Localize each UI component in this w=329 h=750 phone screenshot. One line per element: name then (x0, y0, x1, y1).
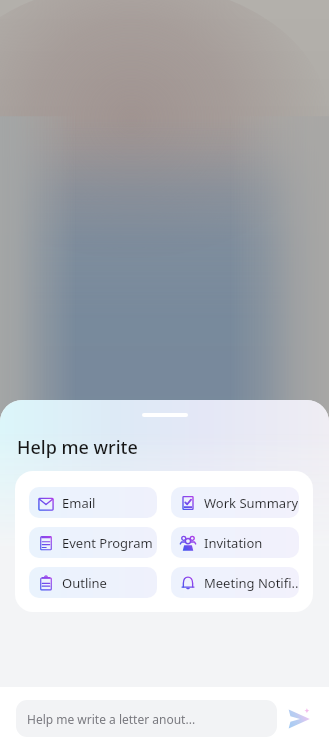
staticText: Help me write (17, 435, 138, 460)
staticText: Meeting Notifi... (204, 574, 298, 592)
button[interactable]: Email (29, 487, 157, 518)
button[interactable]: Send (277, 697, 321, 741)
staticText: Outline (62, 574, 107, 592)
button[interactable]: Work Summary (171, 487, 299, 518)
button[interactable]: Meeting Notifi... (171, 567, 299, 598)
staticText: Help me write a letter anout... (27, 711, 196, 727)
button[interactable]: Outline (29, 567, 157, 598)
staticText: Event Program (62, 534, 153, 552)
staticText: Email (62, 494, 96, 512)
staticText: Invitation (204, 534, 263, 552)
button[interactable]: Help me write a letter anout... (16, 700, 277, 737)
button[interactable]: Invitation (171, 527, 299, 558)
button[interactable]: Event Program (29, 527, 157, 558)
staticText: Work Summary (204, 494, 298, 512)
